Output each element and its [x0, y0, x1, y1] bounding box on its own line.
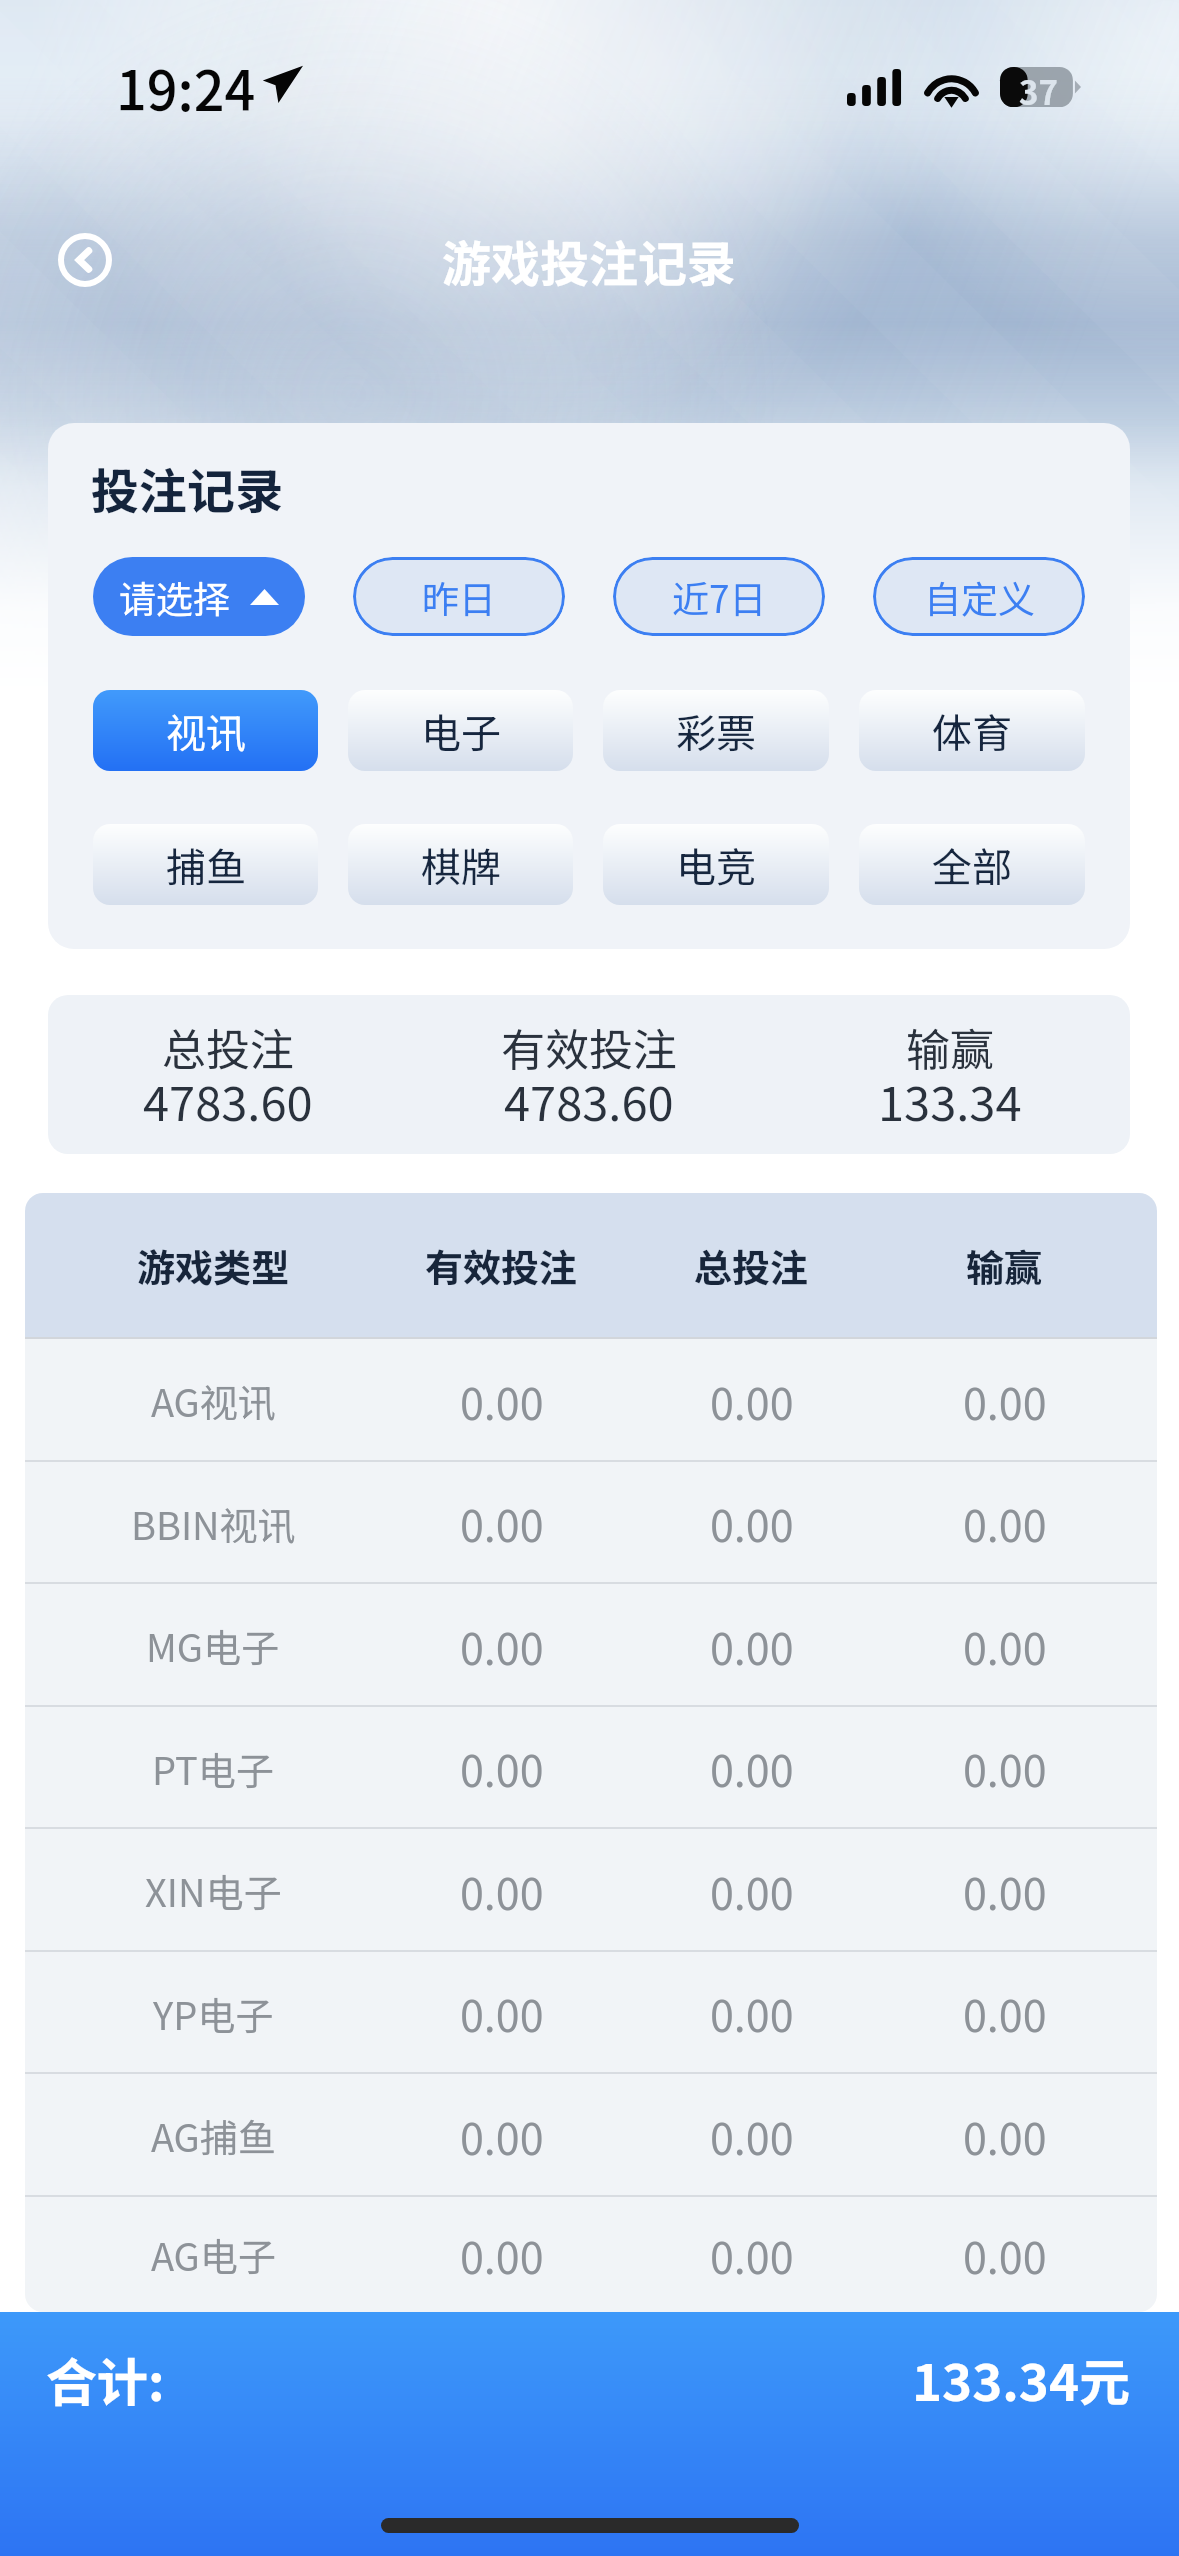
staticText: 0.00 [710, 1737, 794, 1799]
staticText: 4783.60 [504, 1066, 674, 1134]
staticText: BBIN视讯 [131, 1496, 296, 1551]
button[interactable]: 请选择 [93, 557, 305, 636]
staticText: 0.00 [460, 1860, 544, 1922]
button[interactable]: AG视讯 [25, 1339, 1157, 1462]
staticText: 棋牌 [421, 836, 501, 894]
staticText: 游戏类型 [137, 1238, 290, 1293]
staticText: 0.00 [710, 2105, 794, 2167]
button[interactable]: PT电子 [25, 1707, 1157, 1829]
staticText: 游戏投注记录 [442, 225, 737, 296]
staticText: 0.00 [460, 1737, 544, 1799]
staticText: 总投注 [694, 1238, 809, 1293]
button[interactable]: YP电子 [25, 1952, 1157, 2074]
button[interactable]: 棋牌 [348, 824, 573, 905]
staticText: 电子 [421, 702, 501, 760]
staticText: 0.00 [963, 2224, 1047, 2286]
staticText: 输赢 [906, 1015, 994, 1079]
button[interactable]: AG电子 [25, 2197, 1157, 2312]
staticText: 请选择 [119, 570, 230, 624]
staticText: AG视讯 [151, 1373, 276, 1428]
staticText: 0.00 [710, 2224, 794, 2286]
staticText: 37 [1019, 67, 1058, 107]
button[interactable]: 彩票 [603, 690, 829, 771]
button[interactable]: XIN电子 [25, 1829, 1157, 1952]
button[interactable]: 近7日 [613, 557, 825, 636]
button[interactable]: 体育 [859, 690, 1085, 771]
staticText: YP电子 [153, 1986, 274, 2041]
staticText: 133.34元 [912, 2342, 1131, 2416]
staticText: 0.00 [460, 1982, 544, 2044]
button[interactable]: MG电子 [25, 1584, 1157, 1707]
staticText: 0.00 [710, 1370, 794, 1432]
staticText: 0.00 [460, 1370, 544, 1432]
staticText: 近7日 [672, 570, 767, 624]
button[interactable]: 捕鱼 [93, 824, 318, 905]
button[interactable]: 全部 [859, 824, 1085, 905]
staticText: 0.00 [963, 2105, 1047, 2167]
staticText: 0.00 [963, 1492, 1047, 1554]
staticText: 0.00 [460, 1615, 544, 1677]
staticText: 捕鱼 [166, 836, 246, 894]
staticText: AG电子 [151, 2227, 276, 2282]
staticText: 0.00 [460, 2224, 544, 2286]
staticText: 0.00 [963, 1370, 1047, 1432]
button[interactable]: AG捕鱼 [25, 2074, 1157, 2197]
button[interactable]: BBIN视讯 [25, 1462, 1157, 1584]
staticText: 0.00 [460, 2105, 544, 2167]
staticText: PT电子 [152, 1741, 274, 1796]
staticText: 4783.60 [143, 1066, 313, 1134]
button[interactable]: 自定义 [873, 557, 1085, 636]
staticText: 19:24 [116, 48, 256, 126]
staticText: 0.00 [963, 1860, 1047, 1922]
staticText: AG捕鱼 [151, 2108, 276, 2163]
staticText: 0.00 [710, 1492, 794, 1554]
staticText: 133.34 [878, 1066, 1022, 1134]
button[interactable]: 昨日 [353, 557, 565, 636]
staticText: 电竞 [676, 836, 756, 894]
staticText: 投注记录 [91, 453, 284, 523]
staticText: 全部 [932, 836, 1012, 894]
staticText: MG电子 [146, 1618, 280, 1673]
staticText: 昨日 [422, 570, 496, 624]
staticText: 自定义 [924, 570, 1035, 624]
staticText: 输赢 [966, 1238, 1043, 1293]
staticText: 0.00 [963, 1982, 1047, 2044]
staticText: 总投注 [162, 1015, 294, 1079]
staticText: 0.00 [963, 1737, 1047, 1799]
staticText: XIN电子 [145, 1863, 282, 1918]
staticText: 有效投注 [501, 1015, 677, 1079]
staticText: 合计: [46, 2342, 165, 2416]
staticText: 0.00 [710, 1860, 794, 1922]
staticText: 0.00 [460, 1492, 544, 1554]
button[interactable]: Back [44, 219, 126, 301]
staticText: 0.00 [710, 1982, 794, 2044]
staticText: 0.00 [963, 1615, 1047, 1677]
button[interactable]: 电竞 [603, 824, 829, 905]
staticText: 有效投注 [425, 1238, 578, 1293]
staticText: 视讯 [166, 702, 246, 760]
button[interactable]: 电子 [348, 690, 573, 771]
staticText: 彩票 [676, 702, 756, 760]
button[interactable]: 视讯 [93, 690, 318, 771]
staticText: 体育 [932, 702, 1012, 760]
staticText: 0.00 [710, 1615, 794, 1677]
